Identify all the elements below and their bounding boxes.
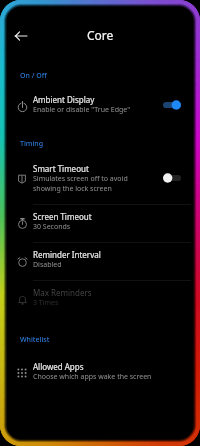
staticText: Simulates screen off to avoid showing th… xyxy=(33,174,128,194)
staticText: Timing xyxy=(20,139,44,149)
button[interactable]: Reminder Interval xyxy=(0,240,200,279)
staticText: Allowed Apps xyxy=(33,361,84,372)
button[interactable]: Max Reminders xyxy=(0,278,200,317)
button[interactable]: Screen Timeout xyxy=(0,202,200,241)
staticText: Choose which apps wake the screen xyxy=(33,372,152,382)
button[interactable]: Turn on xyxy=(163,171,181,185)
staticText: On / Off xyxy=(20,71,47,81)
button[interactable]: Smart Timeout xyxy=(0,154,200,202)
staticText: Ambient Display xyxy=(33,94,95,105)
staticText: Screen Timeout xyxy=(33,211,92,222)
staticText: Core xyxy=(87,27,114,43)
staticText: Disabled xyxy=(33,260,62,270)
staticText: Smart Timeout xyxy=(33,163,89,174)
staticText: Enable or disable "True Edge" xyxy=(33,105,130,115)
button[interactable]: Allowed Apps xyxy=(0,352,200,391)
staticText: Whitelist xyxy=(20,335,50,345)
button[interactable]: Ambient Display xyxy=(0,85,200,124)
button[interactable]: Turn off xyxy=(163,98,181,112)
staticText: 3 Times xyxy=(33,298,59,308)
button[interactable]: Back xyxy=(11,26,31,46)
staticText: Max Reminders xyxy=(33,287,92,298)
staticText: Reminder Interval xyxy=(33,249,101,260)
staticText: 30 Seconds xyxy=(33,222,71,232)
